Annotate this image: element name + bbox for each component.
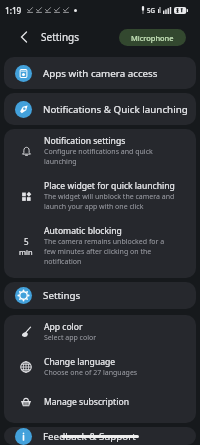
button[interactable]: Apps with camera access xyxy=(4,57,196,89)
staticText: 1:19 xyxy=(5,5,22,16)
staticText: Feedback & Support xyxy=(43,430,136,443)
button[interactable]: Manage subscription xyxy=(4,385,196,420)
staticText: App color xyxy=(44,321,83,333)
staticText: Notification settings xyxy=(44,135,126,147)
staticText: Select app color xyxy=(44,333,97,343)
staticText: Choose one of 27 languages xyxy=(44,368,138,378)
button[interactable]: Settings xyxy=(4,282,196,309)
button[interactable]: Place widget for quick launching xyxy=(4,174,196,219)
staticText: min xyxy=(19,247,33,257)
staticText: Place widget for quick launching xyxy=(44,180,175,192)
button[interactable]: Microphone xyxy=(119,29,186,46)
staticText: The widget will unblock the camera and l… xyxy=(44,192,177,212)
staticText: 5G xyxy=(147,6,156,14)
staticText: The camera remains unblocked for a few m… xyxy=(44,237,177,267)
staticText: Microphone xyxy=(131,33,174,43)
staticText: Change language xyxy=(44,356,116,368)
button[interactable]: Back xyxy=(14,27,34,47)
button[interactable]: App color xyxy=(4,315,196,350)
button[interactable]: Notifications & Quick launching xyxy=(4,93,196,125)
staticText: Notifications & Quick launching xyxy=(43,103,188,116)
button[interactable]: 5 xyxy=(4,219,196,274)
staticText: Settings xyxy=(43,289,81,302)
staticText: Apps with camera access xyxy=(43,67,158,80)
button[interactable]: Notification settings xyxy=(4,129,196,174)
staticText: Manage subscription xyxy=(44,396,129,408)
staticText: Automatic blocking xyxy=(44,225,122,237)
staticText: Settings xyxy=(41,30,80,44)
button[interactable]: Feedback & Support xyxy=(4,427,196,445)
button[interactable]: Change language xyxy=(4,350,196,385)
staticText: Configure notifications and quick launch… xyxy=(44,147,177,167)
staticText: 5 xyxy=(24,236,29,247)
